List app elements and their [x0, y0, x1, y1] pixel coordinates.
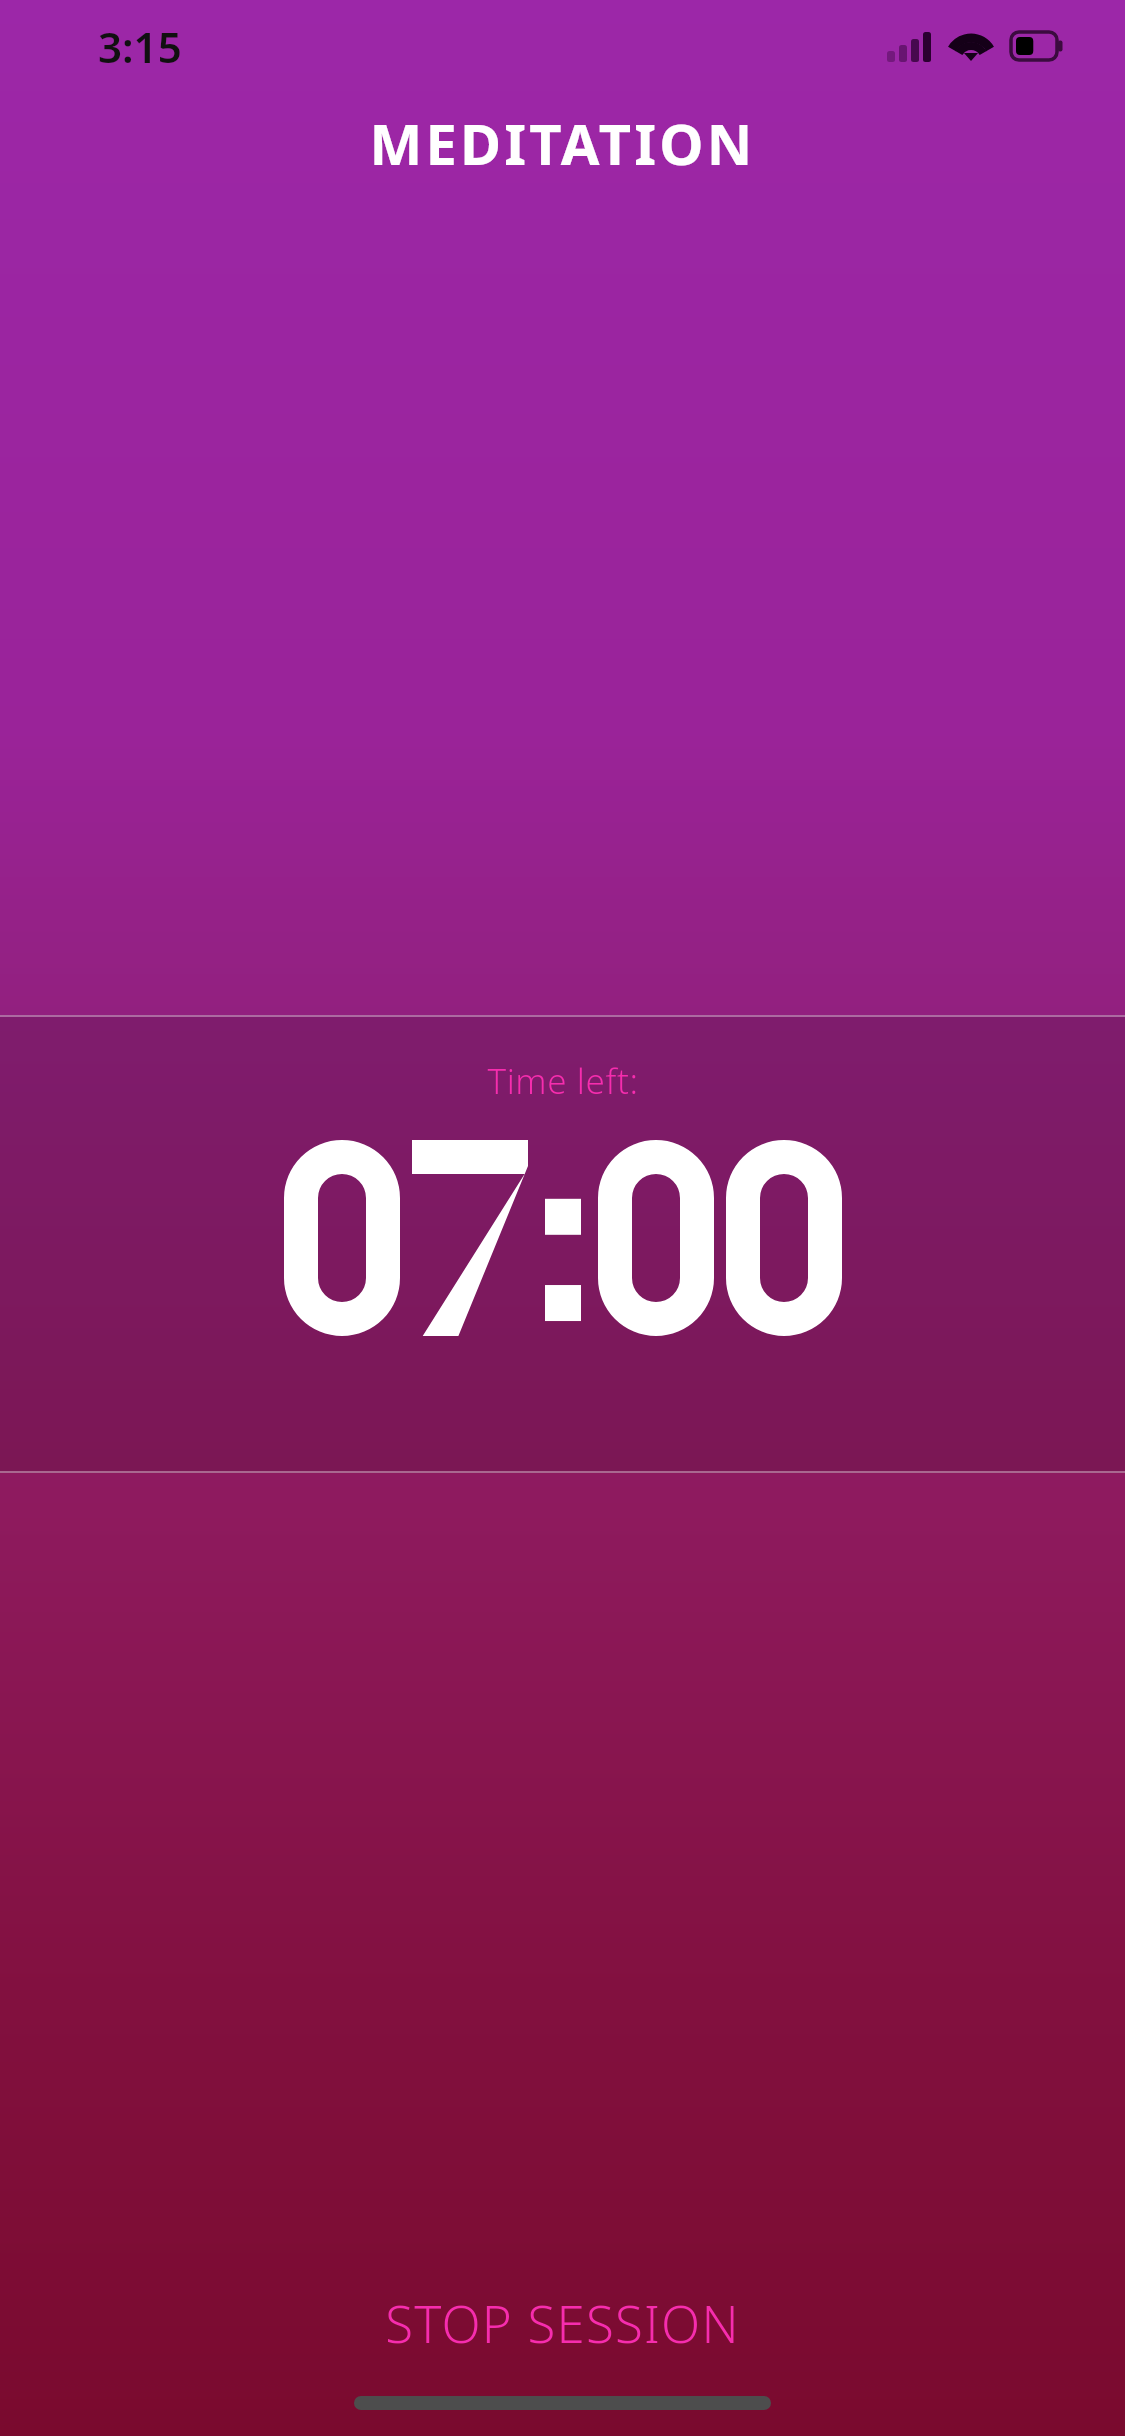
button[interactable]: STOP SESSION [0, 2262, 1125, 2382]
staticText: 3:15 [98, 18, 182, 75]
staticText: MEDITATION [369, 105, 756, 181]
staticText: STOP SESSION [385, 2288, 740, 2357]
staticText: Time left: [487, 1057, 639, 1105]
